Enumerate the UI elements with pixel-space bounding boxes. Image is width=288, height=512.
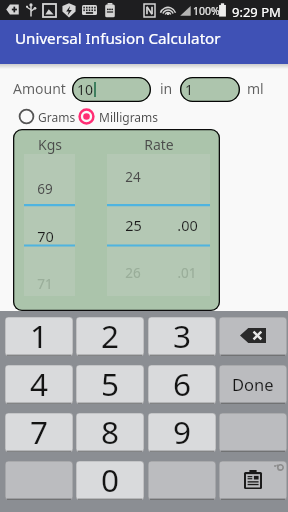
staticText: .00 bbox=[177, 215, 198, 235]
button[interactable]: 0 bbox=[76, 461, 144, 500]
button[interactable]: 7 bbox=[5, 413, 73, 452]
staticText: .01 bbox=[177, 264, 197, 282]
button[interactable] bbox=[219, 413, 287, 452]
button[interactable]: 1 bbox=[180, 77, 240, 102]
staticText: 4 bbox=[30, 365, 49, 401]
button[interactable]: 6 bbox=[148, 365, 216, 404]
staticText: 8 bbox=[101, 413, 120, 449]
staticText: 9 bbox=[173, 413, 192, 449]
button[interactable] bbox=[5, 461, 73, 500]
button[interactable]: 9 bbox=[148, 413, 216, 452]
staticText: 1 bbox=[30, 317, 49, 353]
staticText: Done bbox=[232, 373, 274, 395]
button[interactable]: Milligrams bbox=[78, 108, 159, 125]
button[interactable] bbox=[148, 461, 216, 500]
button[interactable] bbox=[107, 154, 210, 296]
staticText: 5 bbox=[101, 365, 120, 401]
staticText: Universal Infusion Calculator bbox=[15, 28, 221, 49]
button[interactable]: Paste clipboard bbox=[219, 461, 287, 500]
staticText: 24 bbox=[125, 168, 141, 186]
button[interactable]: 8 bbox=[76, 413, 144, 452]
staticText: Milligrams bbox=[99, 109, 159, 125]
staticText: 7 bbox=[30, 413, 49, 449]
button[interactable]: 3 bbox=[148, 317, 216, 356]
button[interactable]: 2 bbox=[76, 317, 144, 356]
staticText: 2 bbox=[101, 317, 120, 353]
button[interactable]: Done bbox=[219, 365, 287, 404]
staticText: 69 bbox=[37, 180, 53, 198]
staticText: 9:29 PM bbox=[232, 3, 281, 21]
staticText: Grams bbox=[38, 109, 76, 125]
staticText: 10 bbox=[77, 80, 94, 99]
staticText: 25 bbox=[125, 215, 142, 235]
button[interactable]: Delete bbox=[219, 317, 287, 356]
button[interactable]: 10 bbox=[72, 77, 151, 102]
button[interactable]: Grams bbox=[18, 108, 76, 125]
staticText: 6 bbox=[173, 365, 192, 401]
button[interactable]: 4 bbox=[5, 365, 73, 404]
staticText: 1 bbox=[185, 80, 194, 99]
staticText: 70 bbox=[37, 226, 54, 246]
button[interactable]: 1 bbox=[5, 317, 73, 356]
staticText: 26 bbox=[125, 264, 141, 282]
button[interactable] bbox=[24, 154, 75, 296]
staticText: 3 bbox=[173, 317, 192, 353]
staticText: Kgs bbox=[38, 135, 62, 154]
staticText: 71 bbox=[37, 275, 53, 293]
staticText: 100% bbox=[193, 4, 220, 18]
staticText: ml bbox=[247, 79, 264, 94]
staticText: 0 bbox=[101, 461, 120, 497]
staticText: in bbox=[160, 79, 173, 94]
staticText: Amount bbox=[13, 79, 66, 94]
staticText: Rate bbox=[144, 135, 174, 154]
button[interactable]: 5 bbox=[76, 365, 144, 404]
